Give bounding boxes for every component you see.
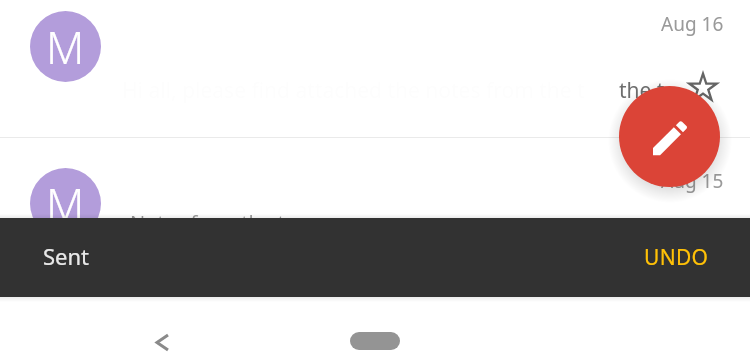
button[interactable]: M xyxy=(0,0,750,137)
button[interactable]: Sent xyxy=(0,218,750,297)
staticText: M xyxy=(46,17,85,77)
button[interactable]: UNDO xyxy=(630,229,723,286)
staticText: M xyxy=(46,174,85,234)
button[interactable]: Back xyxy=(140,320,184,364)
button[interactable]: Compose xyxy=(619,86,720,187)
staticText: Sent xyxy=(43,241,90,271)
button[interactable]: Home xyxy=(350,332,400,350)
staticText: Aug 16 xyxy=(661,11,724,37)
staticText: UNDO xyxy=(644,243,709,272)
staticText: Notes from the te xyxy=(130,209,296,236)
staticText: Aug 15 xyxy=(661,168,724,194)
staticText: the t xyxy=(619,76,665,105)
button[interactable]: M xyxy=(0,137,750,294)
